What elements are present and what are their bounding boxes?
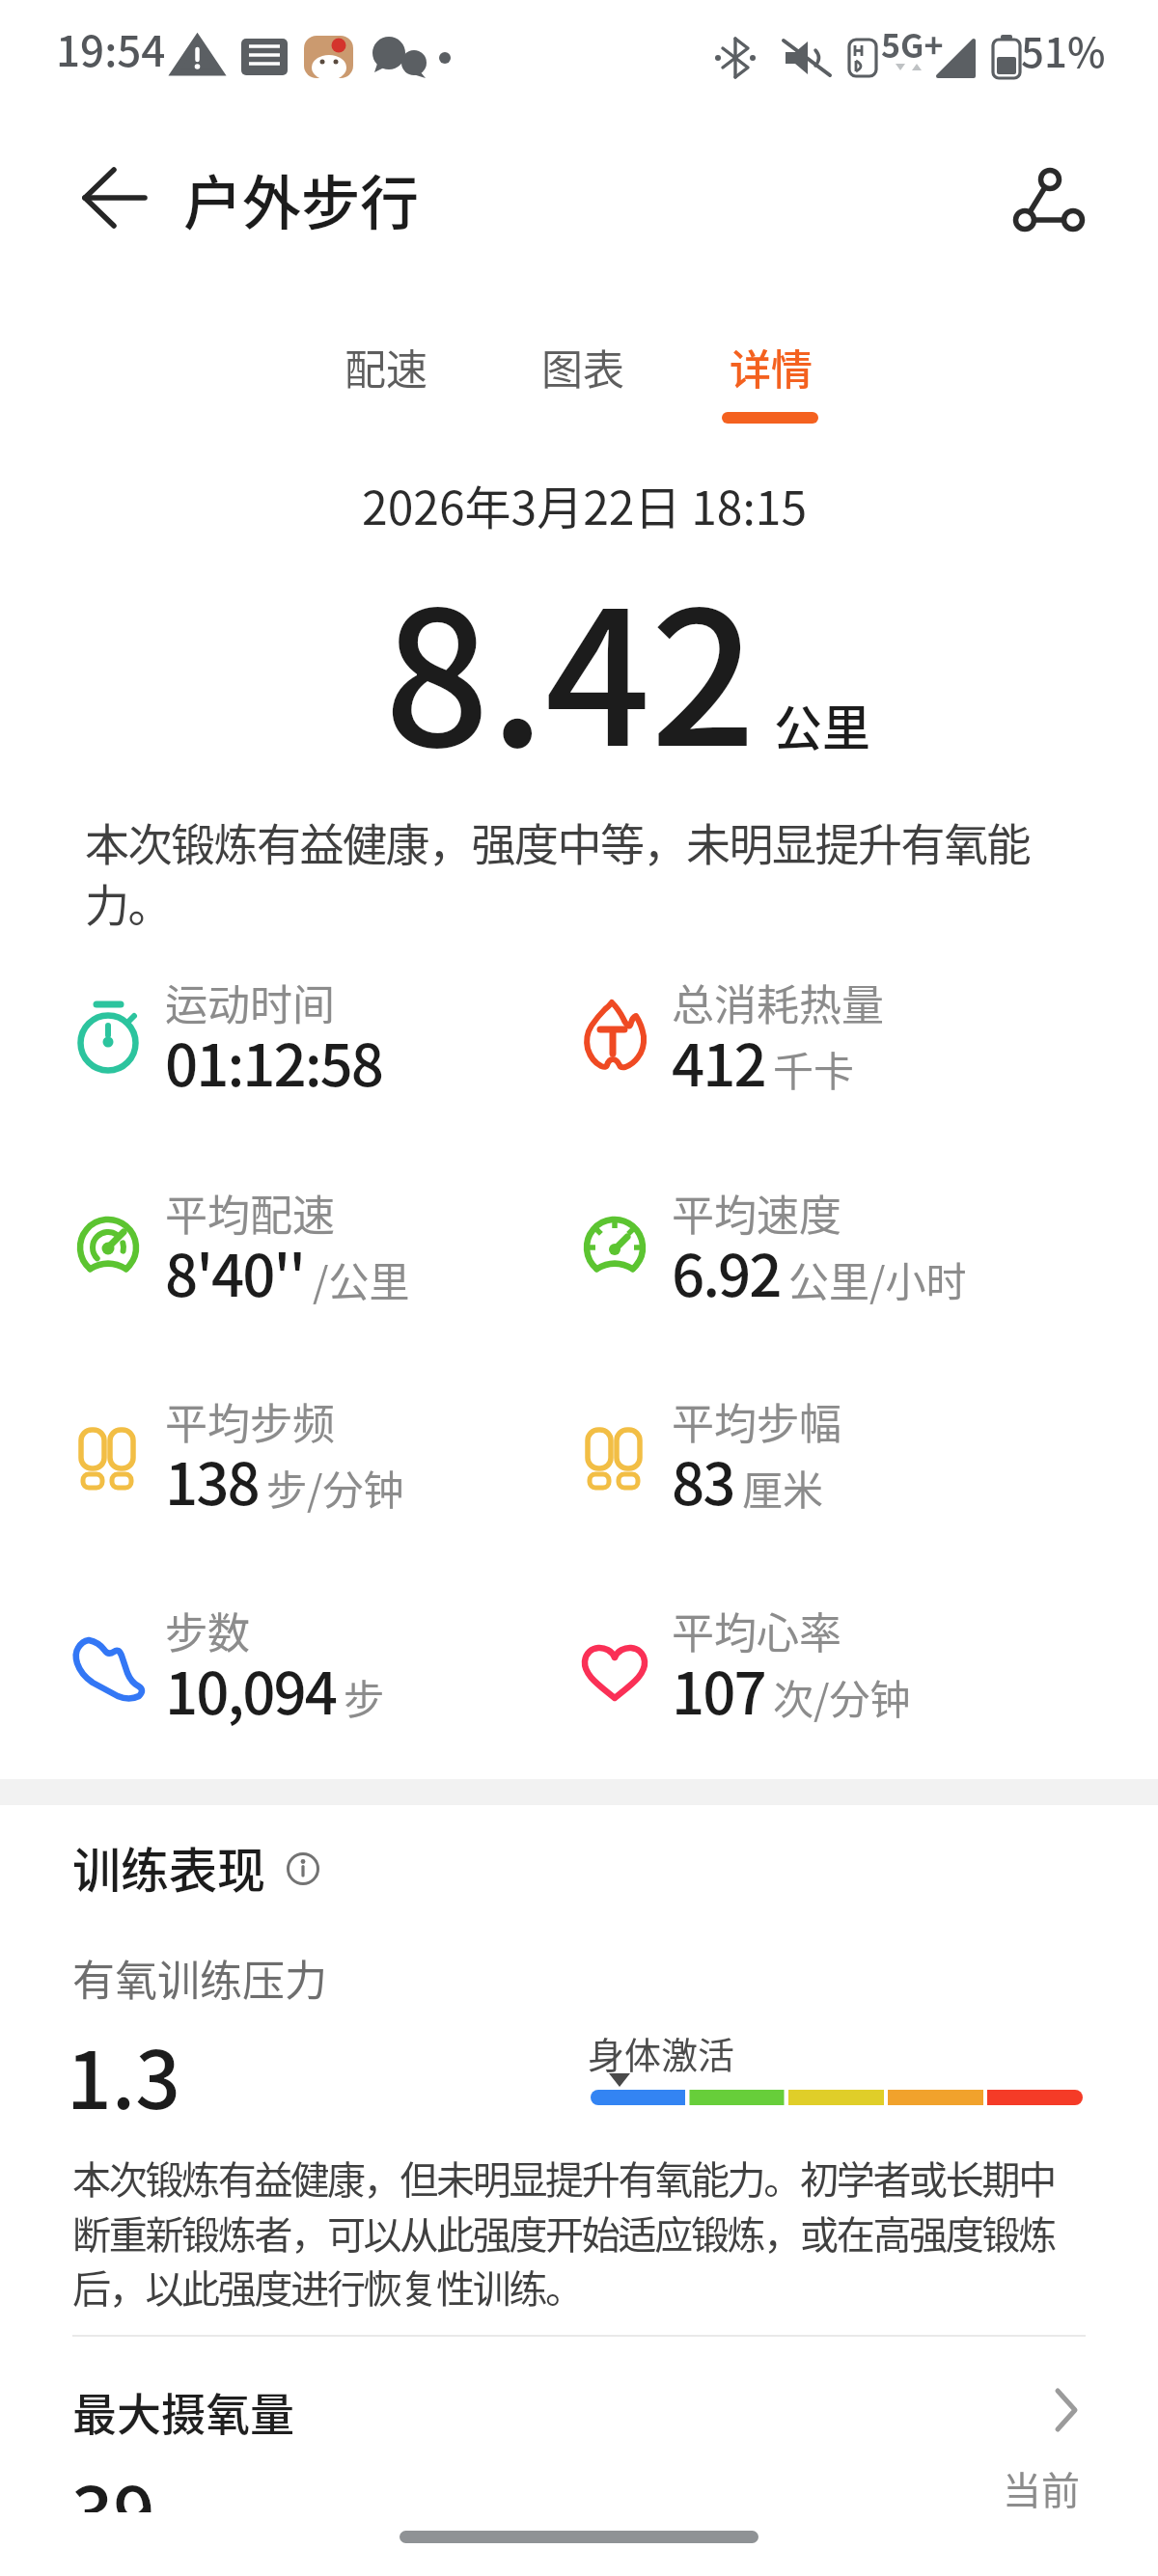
staticText: 图表 <box>541 337 624 397</box>
staticText: 厘米 <box>742 1458 824 1517</box>
button[interactable] <box>58 2364 1100 2460</box>
staticText: 19:54 <box>56 17 166 79</box>
staticText: 步/分钟 <box>266 1458 404 1517</box>
staticText: 本次锻炼有益健康，但未明显提升有氧能力。初学者或长期中断重新锻炼者，可以从此强度… <box>72 2150 1066 2314</box>
staticText: 训练表现 <box>72 1832 265 1902</box>
staticText: 公里/小时 <box>788 1249 967 1308</box>
staticText: 107 <box>672 1647 765 1731</box>
staticText: 51% <box>1021 20 1106 79</box>
staticText: 平均步幅 <box>672 1390 841 1452</box>
staticText: 5G+ <box>881 20 944 68</box>
staticText: 详情 <box>730 337 813 397</box>
button[interactable]: 详情 <box>708 328 834 405</box>
staticText: 83 <box>672 1438 734 1521</box>
button[interactable] <box>994 150 1100 246</box>
button[interactable]: 配速 <box>323 328 449 405</box>
staticText: 1.3 <box>67 2017 180 2132</box>
staticText: 平均配速 <box>165 1182 335 1244</box>
staticText: 千卡 <box>773 1039 855 1098</box>
staticText: /公里 <box>313 1249 410 1308</box>
staticText: 运动时间 <box>165 972 335 1033</box>
staticText: 身体激活 <box>588 2026 735 2079</box>
staticText: 10,094 <box>165 1647 336 1731</box>
staticText: 平均步频 <box>165 1390 335 1452</box>
staticText: 8'40'' <box>165 1229 305 1313</box>
staticText: 本次锻炼有益健康，强度中等，未明显提升有氧能力。 <box>85 809 1040 934</box>
staticText: 最大摄氧量 <box>72 2379 294 2444</box>
button[interactable] <box>286 1851 320 1886</box>
staticText: 户外步行 <box>183 156 420 241</box>
staticText: 步 <box>344 1667 385 1726</box>
staticText: 8.42 <box>384 531 757 799</box>
staticText: 配速 <box>345 337 427 397</box>
staticText: 次/分钟 <box>773 1667 911 1726</box>
staticText: 2026年3月22日 18:15 <box>362 471 808 538</box>
button[interactable] <box>64 154 160 241</box>
staticText: 总消耗热量 <box>672 972 884 1033</box>
staticText: 公里 <box>774 690 870 759</box>
staticText: 6.92 <box>672 1229 781 1313</box>
staticText: 步数 <box>165 1600 250 1661</box>
staticText: 01:12:58 <box>165 1019 382 1103</box>
staticText: 有氧训练压力 <box>72 1947 327 2009</box>
staticText: 412 <box>672 1019 765 1103</box>
staticText: 平均速度 <box>672 1182 841 1244</box>
button[interactable]: 图表 <box>520 328 646 405</box>
staticText: 平均心率 <box>672 1600 841 1661</box>
staticText: 39 <box>71 2455 155 2562</box>
staticText: 当前 <box>1003 2460 1080 2516</box>
staticText: 138 <box>165 1438 259 1521</box>
